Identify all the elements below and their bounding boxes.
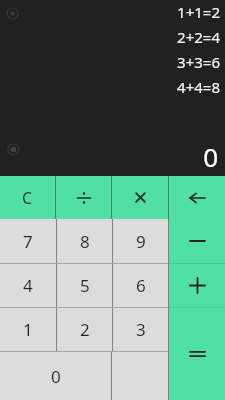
- staticText: 8: [80, 230, 90, 253]
- button[interactable]: 6: [113, 264, 168, 307]
- staticText: 7: [23, 230, 33, 253]
- button[interactable]: Minus: [169, 219, 225, 263]
- button[interactable]: 0: [0, 352, 111, 400]
- button[interactable]: C: [0, 176, 55, 219]
- staticText: 1+1=2: [0, 2, 220, 22]
- button[interactable]: 3: [113, 308, 168, 351]
- button[interactable]: 4: [0, 264, 56, 307]
- staticText: 0: [51, 365, 61, 388]
- staticText: 2: [80, 318, 90, 341]
- button[interactable]: 2: [57, 308, 112, 351]
- button[interactable]: Multiply: [112, 176, 168, 219]
- staticText: 4+4=8: [0, 77, 220, 97]
- button[interactable]: 5: [57, 264, 112, 307]
- staticText: 9: [136, 230, 146, 253]
- button[interactable]: 9: [113, 219, 168, 263]
- staticText: 3+3=6: [0, 52, 220, 72]
- button[interactable]: 7: [0, 219, 56, 263]
- button[interactable]: Divide: [56, 176, 111, 219]
- staticText: 5: [80, 274, 90, 297]
- button[interactable]: Equals: [169, 308, 225, 400]
- staticText: 3: [136, 318, 146, 341]
- staticText: 0: [203, 139, 218, 174]
- staticText: 2+2=4: [0, 27, 220, 47]
- button[interactable]: Plus: [169, 264, 225, 307]
- staticText: 6: [136, 274, 146, 297]
- staticText: 4: [23, 274, 33, 297]
- button[interactable]: 1: [0, 308, 56, 351]
- staticText: C: [22, 187, 33, 209]
- button[interactable]: Backspace: [169, 176, 225, 219]
- button[interactable]: 8: [57, 219, 112, 263]
- staticText: 1: [23, 318, 33, 341]
